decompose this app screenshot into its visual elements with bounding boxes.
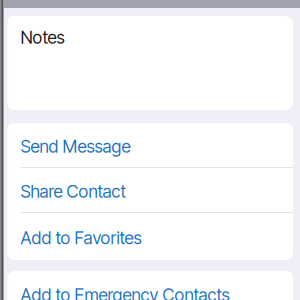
button[interactable]: Send Message — [7, 123, 293, 168]
staticText: Notes — [20, 27, 64, 48]
button[interactable]: Share Contact — [7, 168, 293, 213]
staticText: Add to Favorites — [20, 227, 141, 248]
button[interactable]: Add to Emergency Contacts — [7, 271, 293, 300]
staticText: Add to Emergency Contacts — [20, 284, 229, 300]
button[interactable]: Add to Favorites — [7, 213, 293, 260]
staticText: Send Message — [20, 136, 130, 157]
staticText: Share Contact — [20, 181, 125, 202]
